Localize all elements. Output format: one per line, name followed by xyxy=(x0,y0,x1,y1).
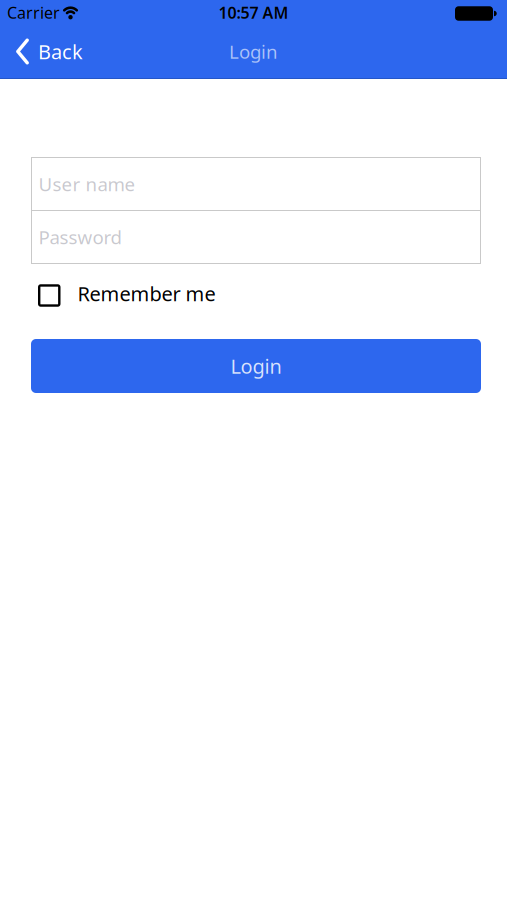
staticText: User name xyxy=(38,172,135,196)
staticText: Login xyxy=(229,39,278,64)
staticText: Back xyxy=(38,38,83,65)
staticText: Carrier xyxy=(7,2,60,23)
staticText: Login xyxy=(230,353,281,379)
staticText: 10:57 AM xyxy=(218,2,288,23)
staticText: Remember me xyxy=(77,280,215,307)
button[interactable]: Login xyxy=(31,339,481,393)
button[interactable]: Back xyxy=(16,38,83,65)
staticText: Password xyxy=(38,225,121,249)
button[interactable]: Remember me xyxy=(31,284,215,307)
